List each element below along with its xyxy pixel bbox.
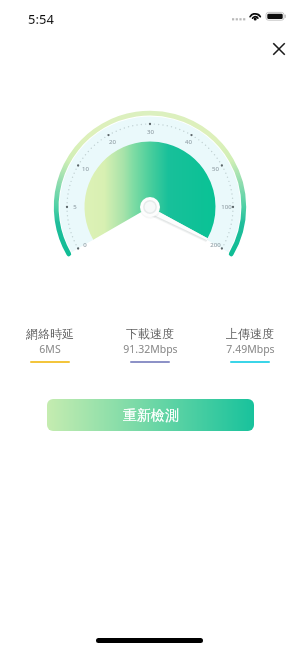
staticText: 5 [73, 203, 77, 211]
staticText: 10 [82, 165, 89, 173]
staticText: 上傳速度 [226, 326, 274, 341]
button[interactable]: Close [266, 36, 292, 62]
staticText: 200 [210, 241, 221, 249]
staticText: 下載速度 [126, 326, 174, 341]
staticText: 91.32Mbps [123, 342, 178, 356]
staticText: 0 [83, 241, 87, 249]
staticText: 30 [147, 128, 154, 136]
staticText: 20 [109, 138, 116, 146]
staticText: 50 [212, 165, 219, 173]
button[interactable]: 下載速度 [100, 326, 200, 363]
staticText: 7.49Mbps [226, 342, 275, 356]
button[interactable]: 重新檢測 [47, 399, 254, 431]
staticText: 網絡時延 [26, 326, 74, 341]
staticText: 重新檢測 [123, 407, 179, 425]
button[interactable]: 上傳速度 [200, 326, 300, 363]
button[interactable]: 網絡時延 [0, 326, 100, 363]
staticText: 6MS [39, 342, 61, 356]
staticText: 100 [221, 203, 232, 211]
staticText: 40 [185, 138, 192, 146]
staticText: 5:54 [28, 10, 54, 28]
